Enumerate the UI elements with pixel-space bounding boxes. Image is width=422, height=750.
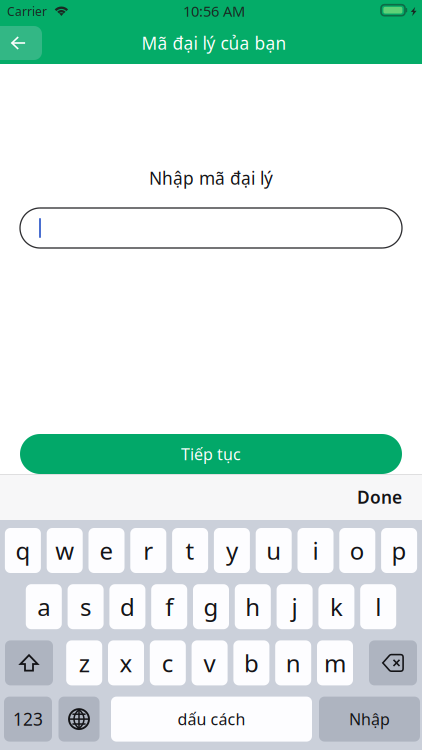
button[interactable]: Done (351, 479, 408, 514)
button[interactable]: i (297, 528, 333, 573)
staticText: Mã đại lý của bạn (141, 31, 286, 54)
staticText: j (292, 591, 298, 623)
staticText: q (15, 535, 30, 566)
staticText: w (55, 535, 74, 566)
staticText: g (203, 591, 218, 623)
staticText: u (266, 535, 281, 566)
button[interactable]: r (130, 528, 166, 573)
staticText: f (165, 591, 173, 623)
button[interactable]: Shift (5, 640, 53, 685)
staticText: y (226, 535, 238, 566)
staticText: l (375, 591, 381, 623)
button[interactable]: 123 (4, 697, 52, 742)
staticText: v (204, 647, 216, 679)
button[interactable]: m (317, 640, 353, 685)
staticText: e (99, 535, 113, 566)
button[interactable]: z (66, 640, 102, 685)
staticText: x (119, 647, 132, 679)
staticText: m (324, 647, 346, 679)
button[interactable]: Tiếp tục (20, 434, 402, 474)
button[interactable]: k (318, 584, 354, 629)
staticText: 123 (13, 708, 43, 731)
button[interactable]: o (339, 528, 375, 573)
staticText: z (79, 647, 90, 679)
button[interactable]: h (235, 584, 271, 629)
button[interactable]: Back (0, 26, 42, 60)
button[interactable]: j (277, 584, 313, 629)
button[interactable]: w (47, 528, 83, 573)
staticText: s (80, 591, 91, 623)
button[interactable]: x (108, 640, 144, 685)
staticText: Tiếp tục (181, 443, 241, 465)
staticText: 10:56 AM (183, 1, 245, 21)
button[interactable]: l (360, 584, 396, 629)
staticText: k (330, 591, 343, 623)
staticText: b (244, 647, 259, 679)
button[interactable]: u (256, 528, 292, 573)
staticText: d (120, 591, 135, 623)
button[interactable]: Nhập (319, 697, 420, 742)
button[interactable]: f (151, 584, 187, 629)
button[interactable]: a (26, 584, 62, 629)
staticText: p (392, 535, 407, 566)
staticText: o (350, 535, 365, 566)
button[interactable]: Delete (369, 640, 417, 685)
button[interactable]: c (150, 640, 186, 685)
staticText: dấu cách (177, 708, 245, 730)
button[interactable]: b (233, 640, 269, 685)
staticText: Done (357, 485, 402, 508)
button[interactable]: v (192, 640, 228, 685)
staticText: Nhập (349, 708, 390, 730)
staticText: Nhập mã đại lý (149, 166, 273, 189)
staticText: n (286, 647, 301, 679)
button[interactable]: y (214, 528, 250, 573)
staticText: r (143, 535, 153, 566)
button[interactable]: g (193, 584, 229, 629)
button[interactable]: Next keyboard (58, 697, 99, 742)
button[interactable]: p (381, 528, 417, 573)
staticText: h (245, 591, 260, 623)
button[interactable]: q (5, 528, 41, 573)
staticText: Carrier (7, 3, 47, 19)
staticText: a (37, 591, 50, 623)
staticText: i (312, 535, 318, 566)
button[interactable]: n (275, 640, 311, 685)
button[interactable]: d (109, 584, 145, 629)
button[interactable]: s (68, 584, 104, 629)
staticText: c (162, 647, 174, 679)
button[interactable]: t (172, 528, 208, 573)
button[interactable]: dấu cách (111, 697, 312, 742)
button[interactable]: e (88, 528, 124, 573)
staticText: t (186, 535, 195, 566)
